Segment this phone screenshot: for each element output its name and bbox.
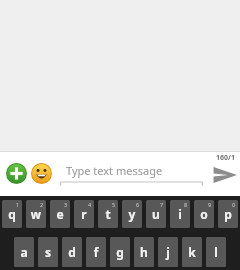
staticText: 3: [64, 201, 68, 208]
staticText: 9: [208, 201, 212, 208]
staticText: t: [98, 206, 118, 222]
staticText: 8: [184, 201, 188, 208]
button[interactable]: g: [110, 237, 130, 267]
staticText: e: [50, 206, 70, 222]
staticText: p: [218, 206, 238, 222]
staticText: l: [206, 244, 226, 260]
button[interactable]: 3: [50, 200, 70, 228]
staticText: Type text message: [66, 163, 163, 178]
staticText: a: [14, 244, 34, 260]
button[interactable]: 0: [218, 200, 238, 228]
staticText: w: [26, 206, 46, 222]
button[interactable]: 1: [2, 200, 22, 228]
button[interactable]: 6: [122, 200, 142, 228]
staticText: 160/1: [216, 153, 235, 163]
button[interactable]: s: [38, 237, 58, 267]
staticText: k: [182, 244, 202, 260]
button[interactable]: l: [206, 237, 226, 267]
staticText: j: [158, 244, 178, 260]
staticText: h: [134, 244, 154, 260]
button[interactable]: Add attachment: [5, 162, 27, 184]
staticText: y: [122, 206, 142, 222]
staticText: 6: [136, 201, 140, 208]
staticText: r: [74, 206, 94, 222]
button[interactable]: 2: [26, 200, 46, 228]
staticText: 1: [16, 201, 20, 208]
staticText: 2: [40, 201, 44, 208]
button[interactable]: j: [158, 237, 178, 267]
staticText: s: [38, 244, 58, 260]
button[interactable]: f: [86, 237, 106, 267]
staticText: d: [62, 244, 82, 260]
button[interactable]: h: [134, 237, 154, 267]
button[interactable]: Insert emoji: [30, 162, 52, 184]
staticText: 4: [88, 201, 92, 208]
button[interactable]: 5: [98, 200, 118, 228]
staticText: f: [86, 244, 106, 260]
button[interactable]: d: [62, 237, 82, 267]
staticText: u: [146, 206, 166, 222]
button[interactable]: Send: [210, 162, 240, 188]
button[interactable]: 8: [170, 200, 190, 228]
staticText: i: [170, 206, 190, 222]
staticText: 5: [112, 201, 116, 208]
button[interactable]: 4: [74, 200, 94, 228]
button[interactable]: a: [14, 237, 34, 267]
button[interactable]: Type text message: [60, 163, 203, 187]
button[interactable]: 7: [146, 200, 166, 228]
staticText: o: [194, 206, 214, 222]
staticText: q: [2, 206, 22, 222]
staticText: 0: [232, 201, 236, 208]
staticText: g: [110, 244, 130, 260]
staticText: 7: [160, 201, 164, 208]
button[interactable]: 9: [194, 200, 214, 228]
button[interactable]: k: [182, 237, 202, 267]
